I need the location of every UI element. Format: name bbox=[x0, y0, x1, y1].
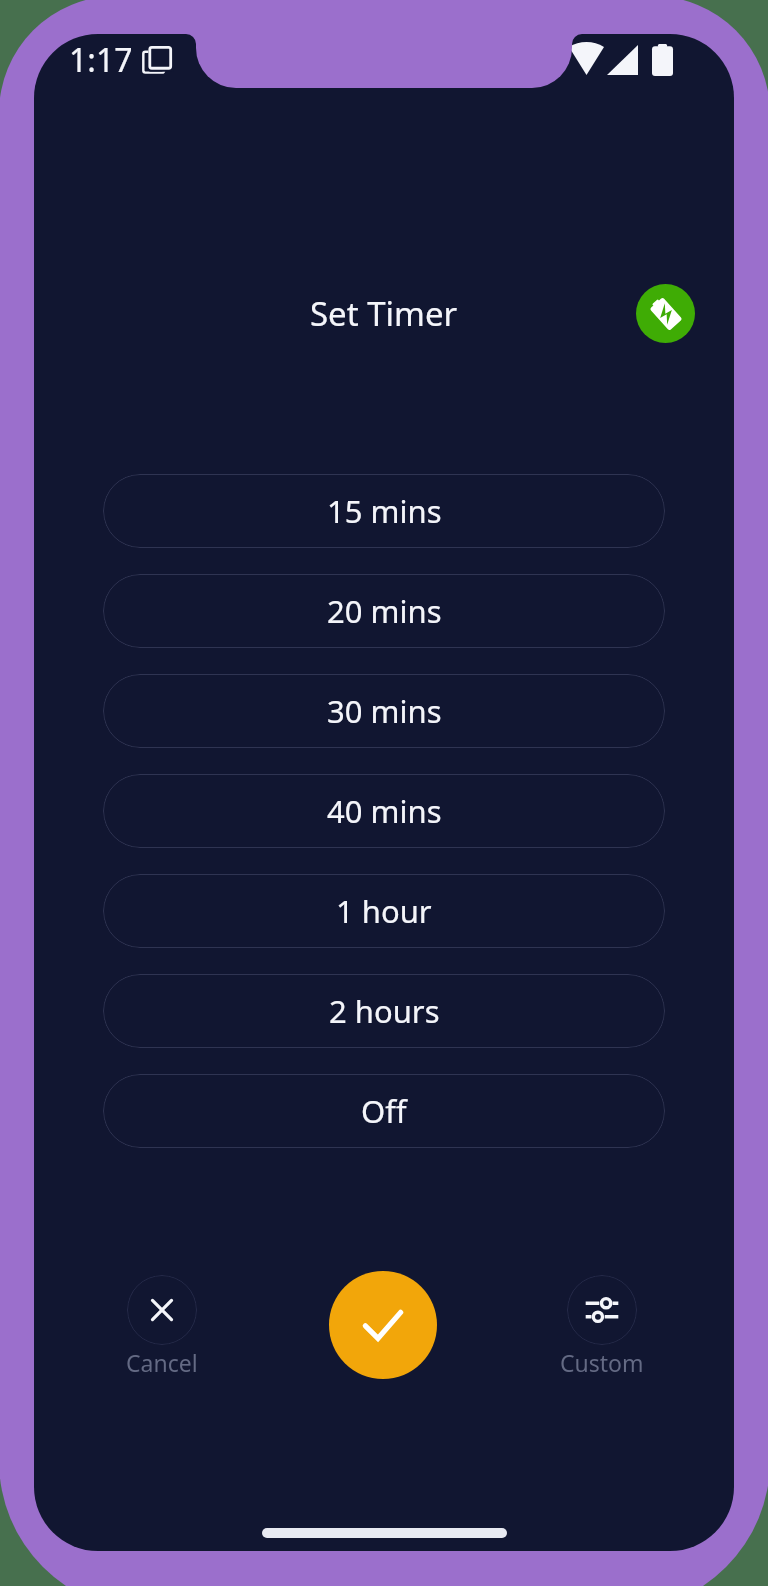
staticText: Custom bbox=[560, 1347, 644, 1378]
button[interactable]: Confirm bbox=[329, 1271, 437, 1379]
staticText: 30 mins bbox=[327, 690, 442, 732]
button[interactable]: 15 mins bbox=[103, 474, 665, 548]
staticText: 15 mins bbox=[327, 490, 442, 532]
button[interactable]: 1 hour bbox=[103, 874, 665, 948]
button[interactable]: Cancel bbox=[92, 1275, 232, 1378]
button[interactable]: 30 mins bbox=[103, 674, 665, 748]
button[interactable]: Custom bbox=[532, 1275, 672, 1378]
staticText: 1 hour bbox=[336, 890, 432, 932]
button[interactable]: 2 hours bbox=[103, 974, 665, 1048]
staticText: 40 mins bbox=[327, 790, 442, 832]
staticText: 20 mins bbox=[327, 590, 442, 632]
staticText: Set Timer bbox=[310, 291, 458, 336]
staticText: Cancel bbox=[126, 1347, 198, 1378]
staticText: Off bbox=[361, 1090, 407, 1132]
staticText: 2 hours bbox=[329, 990, 440, 1032]
button[interactable]: 40 mins bbox=[103, 774, 665, 848]
button[interactable]: Battery charging bbox=[636, 284, 695, 343]
staticText: 1:17 bbox=[69, 38, 133, 82]
button[interactable]: 20 mins bbox=[103, 574, 665, 648]
button[interactable]: Off bbox=[103, 1074, 665, 1148]
